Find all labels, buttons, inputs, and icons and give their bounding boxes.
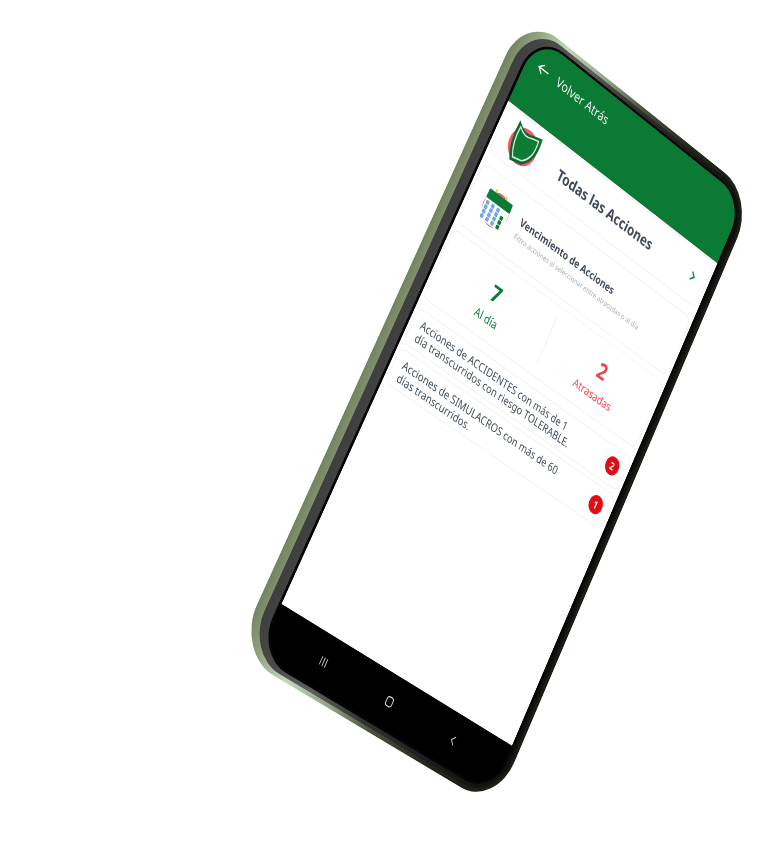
- staticText: Atrasadas: [571, 374, 614, 414]
- button[interactable]: Vencimiento de Acciones: [457, 161, 691, 377]
- button[interactable]: Home: [367, 674, 411, 728]
- staticText: Todas las Acciones: [554, 164, 656, 255]
- staticText: 7: [486, 277, 508, 311]
- staticText: Filtra acciones al seleccionar entre atr…: [512, 231, 640, 332]
- staticText: 2: [593, 354, 613, 388]
- staticText: 2: [607, 458, 617, 474]
- button[interactable]: Back: [432, 714, 474, 766]
- button[interactable]: Acciones de ACCIDENTES con más de 1 día …: [403, 306, 632, 492]
- button[interactable]: 7: [423, 228, 664, 449]
- staticText: Al día: [472, 303, 500, 333]
- button[interactable]: Todas las Acciones: [488, 104, 715, 309]
- staticText: Vencimiento de Acciones: [518, 214, 617, 298]
- staticText: Acciones de ACCIDENTES con más de 1 día …: [412, 316, 580, 453]
- button[interactable]: Acciones de SIMULACROS con más de 60 día…: [384, 346, 616, 530]
- staticText: 1: [591, 497, 601, 512]
- button[interactable]: Volver Atrás: [529, 50, 617, 136]
- staticText: Acciones de SIMULACROS con más de 60 día…: [394, 356, 563, 492]
- staticText: Volver Atrás: [554, 72, 612, 129]
- button[interactable]: Recents: [301, 634, 346, 688]
